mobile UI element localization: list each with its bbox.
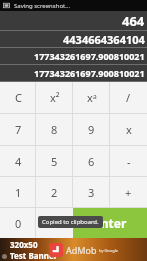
button[interactable]: 6 <box>73 146 110 176</box>
staticText: / <box>126 90 131 105</box>
button[interactable]: 3 <box>73 177 110 207</box>
button[interactable]: 9 <box>73 114 110 145</box>
staticText: 2 <box>51 185 58 200</box>
button[interactable]: 7 <box>0 114 36 145</box>
staticText: 7 <box>15 122 22 137</box>
button[interactable]: 8 <box>36 114 73 145</box>
button[interactable]: + <box>110 177 147 207</box>
button[interactable]: 4 <box>0 146 36 176</box>
button[interactable]: - <box>110 146 147 176</box>
staticText: 0 <box>15 216 22 231</box>
staticText: xᵃ <box>87 90 97 105</box>
staticText: + <box>125 185 132 200</box>
staticText: 5 <box>51 154 58 169</box>
staticText: 1 <box>15 185 22 200</box>
staticText: - <box>127 154 131 169</box>
staticText: 6 <box>88 154 95 169</box>
staticText: Enter <box>94 215 127 231</box>
staticText: 4 <box>15 154 22 169</box>
button[interactable]: 464 <box>0 11 147 30</box>
button[interactable]: C <box>0 82 36 113</box>
button[interactable]: / <box>110 82 147 113</box>
staticText: Saving screenshot... <box>14 2 71 10</box>
staticText: 177343261697.900810021 <box>34 50 145 62</box>
button[interactable]: x <box>110 114 147 145</box>
staticText: 464 <box>122 12 145 30</box>
staticText: 8 <box>51 122 58 137</box>
staticText: x <box>126 122 132 137</box>
staticText: 3 <box>88 185 95 200</box>
button[interactable]: 320x50 <box>0 238 147 261</box>
button[interactable]: Enter <box>73 208 147 238</box>
staticText: 177343261697.900810021 <box>34 67 145 79</box>
staticText: C <box>15 90 22 105</box>
staticText: 320x50 <box>10 239 38 250</box>
staticText: x² <box>50 90 60 105</box>
button[interactable]: xᵃ <box>73 82 110 113</box>
staticText: Copied to clipboard. <box>42 218 99 226</box>
staticText: by Google <box>99 248 118 253</box>
other: AdMob <box>49 243 63 257</box>
staticText: 9 <box>88 122 95 137</box>
button[interactable]: 177343261697.900810021 <box>0 65 147 81</box>
button[interactable]: 4434664364104 <box>0 31 147 47</box>
other: Screenshot <box>3 2 10 9</box>
button[interactable]: 177343261697.900810021 <box>0 48 147 64</box>
button[interactable]: x² <box>36 82 73 113</box>
button[interactable]: 2 <box>36 177 73 207</box>
staticText: AdMob <box>66 244 97 256</box>
staticText: Test Banner <box>10 250 58 261</box>
staticText: 4434664364104 <box>63 32 145 47</box>
button[interactable]: 0 <box>0 208 73 238</box>
button[interactable]: 1 <box>0 177 36 207</box>
button[interactable]: 5 <box>36 146 73 176</box>
